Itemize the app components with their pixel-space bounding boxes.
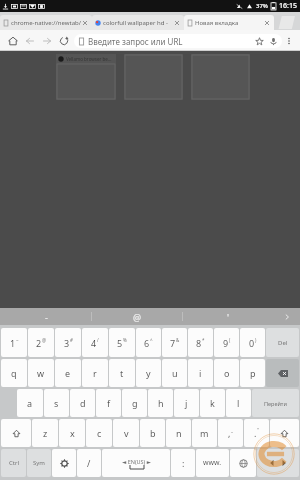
staticText: d <box>80 397 86 409</box>
staticText: v <box>124 427 129 439</box>
button[interactable]: c <box>86 419 112 447</box>
button[interactable]: g <box>122 389 147 417</box>
button[interactable]: Новая вкладка <box>184 15 274 30</box>
button[interactable]: s <box>44 389 69 417</box>
button[interactable]: y <box>136 359 161 387</box>
staticText: * <box>202 337 205 343</box>
button[interactable]: t <box>109 359 135 387</box>
button[interactable]: More options <box>282 30 296 51</box>
button[interactable]: Back <box>21 32 38 49</box>
button[interactable]: : <box>171 449 195 477</box>
staticText: Vellamo browser be... <box>66 56 112 62</box>
button[interactable]: Close tab <box>81 19 89 27</box>
staticText: . <box>254 427 257 439</box>
button[interactable]: u <box>162 359 187 387</box>
button[interactable]: Voice search <box>269 37 278 46</box>
button[interactable] <box>270 419 299 447</box>
button[interactable]: 8 <box>188 328 213 357</box>
staticText: 2 <box>36 337 42 349</box>
button[interactable]: a <box>17 389 43 417</box>
staticText: m <box>200 427 209 439</box>
button[interactable]: 5 <box>109 328 135 357</box>
button[interactable]: p <box>240 359 265 387</box>
button[interactable]: www. <box>196 449 229 477</box>
button[interactable] <box>266 359 299 387</box>
button[interactable]: d <box>70 389 95 417</box>
button[interactable]: x <box>59 419 85 447</box>
staticText: q <box>11 367 17 379</box>
button[interactable]: f <box>96 389 121 417</box>
button[interactable]: Forward <box>38 32 55 49</box>
button[interactable]: Введите запрос или URL <box>74 34 282 48</box>
button[interactable]: Space <box>102 449 170 477</box>
button[interactable]: r <box>82 359 108 387</box>
button[interactable]: k <box>200 389 225 417</box>
button[interactable] <box>1 419 31 447</box>
button[interactable]: 2 <box>28 328 54 357</box>
staticText: 16:15 <box>279 1 297 11</box>
button[interactable]: b <box>140 419 165 447</box>
staticText: 9 <box>223 337 229 349</box>
button[interactable]: / <box>77 449 101 477</box>
staticText: g <box>132 397 138 409</box>
button[interactable]: Language <box>230 449 256 477</box>
button[interactable]: Del <box>266 328 299 357</box>
button[interactable]: 4 <box>82 328 108 357</box>
button[interactable]: Sym <box>27 449 51 477</box>
button[interactable]: Ctrl <box>1 449 26 477</box>
button[interactable]: Close tab <box>263 19 271 27</box>
button[interactable]: Перейти <box>252 389 299 417</box>
button[interactable]: Vellamo browser be... <box>56 54 116 100</box>
button[interactable]: 6 <box>136 328 161 357</box>
button[interactable]: 9 <box>214 328 239 357</box>
staticText: 0 <box>249 337 255 349</box>
staticText: colorfull wallpaper hd - Пои <box>103 19 173 27</box>
button[interactable]: Move cursor <box>257 449 299 477</box>
button[interactable]: , <box>218 419 243 447</box>
button[interactable]: colorfull wallpaper hd - Пои <box>92 15 184 30</box>
button[interactable]: 0 <box>240 328 265 357</box>
button[interactable]: Close tab <box>173 19 181 27</box>
button[interactable]: Reload <box>55 32 72 49</box>
staticText: 8 <box>196 337 202 349</box>
button[interactable]: 7 <box>162 328 187 357</box>
button[interactable]: j <box>174 389 199 417</box>
staticText: , <box>228 427 231 439</box>
button[interactable]: 3 <box>55 328 81 357</box>
button[interactable]: . <box>244 419 269 447</box>
button[interactable]: q <box>1 359 27 387</box>
staticText: ^ <box>150 337 153 343</box>
button[interactable]: More suggestions <box>274 308 300 325</box>
staticText: % <box>123 337 127 343</box>
staticText: Del <box>278 339 288 347</box>
button[interactable]: Bookmark <box>255 37 264 46</box>
staticText: ) <box>255 337 257 343</box>
button[interactable]: l <box>226 389 251 417</box>
staticText: 37% <box>256 2 268 10</box>
button[interactable]: Home <box>4 32 21 49</box>
button[interactable]: n <box>166 419 191 447</box>
button[interactable]: New tab <box>275 16 295 29</box>
button[interactable]: m <box>192 419 217 447</box>
button[interactable]: i <box>188 359 213 387</box>
staticText: ◄ EN(US) ► <box>122 458 151 465</box>
button[interactable]: z <box>32 419 58 447</box>
button[interactable]: w <box>28 359 54 387</box>
staticText: ( <box>229 337 231 343</box>
staticText: 3 <box>64 337 70 349</box>
button[interactable]: chrome-native://newtab/ <box>0 15 92 30</box>
button[interactable]: v <box>113 419 139 447</box>
button[interactable]: @ <box>92 308 183 325</box>
button[interactable]: 1 <box>1 328 27 357</box>
button[interactable]: Settings <box>52 449 76 477</box>
staticText: ~ <box>16 337 19 343</box>
button[interactable]: h <box>148 389 173 417</box>
button[interactable]: e <box>55 359 81 387</box>
staticText: ' <box>227 311 230 323</box>
staticText: p <box>250 367 256 379</box>
button[interactable]: o <box>214 359 239 387</box>
